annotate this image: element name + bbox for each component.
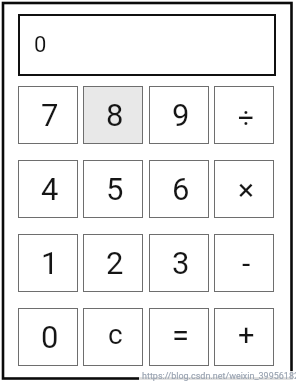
staticText: ÷ [238,101,254,134]
staticText: https://blog.csdn.net/weixin_39956182 [142,371,296,382]
staticText: 3 [172,245,190,281]
staticText: c [108,318,123,351]
staticText: + [238,318,255,352]
staticText: 7 [41,97,59,133]
staticText: = [172,317,190,353]
button[interactable]: 9 [149,86,209,144]
staticText: 1 [41,245,59,281]
button[interactable]: + [214,308,274,366]
staticText: × [238,172,255,207]
staticText: 9 [172,97,190,133]
button[interactable]: - [214,234,274,292]
staticText: 0 [34,32,47,58]
staticText: 5 [106,171,124,207]
staticText: 2 [106,245,124,281]
staticText: 8 [106,97,124,133]
button[interactable]: 4 [18,160,78,218]
button[interactable]: 2 [83,234,143,292]
button[interactable]: 0 [18,308,78,366]
button[interactable]: 1 [18,234,78,292]
button[interactable]: 3 [149,234,209,292]
button[interactable]: ÷ [214,86,274,144]
staticText: 4 [41,171,59,207]
button[interactable]: 5 [83,160,143,218]
button[interactable]: c [83,308,143,366]
staticText: - [242,246,251,281]
button[interactable]: 6 [149,160,209,218]
staticText: 0 [41,319,59,355]
staticText: 6 [172,171,190,207]
button[interactable]: = [149,308,209,366]
button[interactable]: 7 [18,86,78,144]
button[interactable]: 8 [83,86,143,144]
button[interactable]: × [214,160,274,218]
